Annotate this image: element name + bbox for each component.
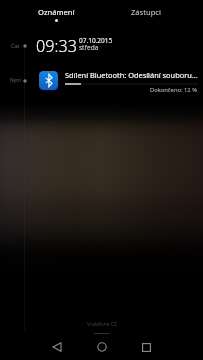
button[interactable]: Back [34,334,79,360]
staticText: středa [79,43,99,52]
staticText: Zástupci [131,7,161,17]
button[interactable]: Oznámení [12,0,101,26]
staticText: Dokončeno: 12 % [65,86,197,94]
staticText: Nyní [10,77,21,84]
staticText: Sdílení Bluetooth: Odesílání souboru... [65,70,198,80]
staticText: 07.10.2015 [79,36,113,45]
staticText: Čas [11,43,20,50]
button[interactable]: Home [79,334,124,360]
button[interactable]: Nyní [0,66,203,100]
button[interactable]: Recents [124,334,169,360]
staticText: Vodafone CZ [87,321,117,328]
button[interactable]: Zástupci [101,0,191,26]
staticText: 09:33 [36,35,77,57]
staticText: Oznámení [38,7,75,17]
